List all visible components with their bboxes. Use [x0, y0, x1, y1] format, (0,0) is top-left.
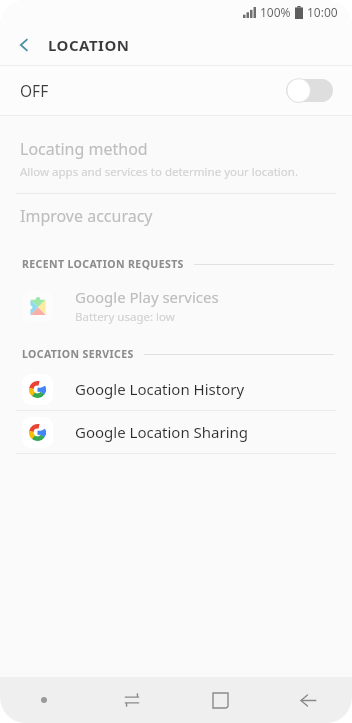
- button[interactable]: Locating method: [0, 126, 352, 193]
- staticText: RECENT LOCATION REQUESTS: [22, 257, 184, 271]
- button[interactable]: Back: [0, 24, 48, 65]
- staticText: Allow apps and services to determine you…: [20, 164, 298, 180]
- button[interactable]: Location switch, off: [286, 77, 333, 104]
- staticText: LOCATION: [48, 35, 130, 55]
- staticText: Google Location Sharing: [75, 422, 249, 442]
- button[interactable]: Home: [176, 677, 264, 723]
- staticText: Google Location History: [75, 379, 245, 399]
- staticText: Locating method: [20, 138, 148, 160]
- button[interactable]: Google Location History: [0, 368, 352, 410]
- button[interactable]: Improve accuracy: [0, 194, 352, 238]
- staticText: 10:00: [307, 4, 338, 20]
- button[interactable]: Back: [264, 677, 352, 723]
- button[interactable]: Recent apps: [88, 677, 176, 723]
- staticText: Google Play services: [75, 287, 219, 307]
- staticText: 100%: [260, 4, 291, 20]
- button[interactable]: Google Play services: [0, 278, 352, 334]
- staticText: Battery usage: low: [75, 309, 175, 325]
- staticText: OFF: [20, 80, 49, 101]
- button[interactable]: Google Location Sharing: [0, 411, 352, 453]
- staticText: LOCATION SERVICES: [22, 347, 134, 361]
- staticText: Improve accuracy: [20, 205, 153, 227]
- button[interactable]: OFF: [0, 66, 352, 115]
